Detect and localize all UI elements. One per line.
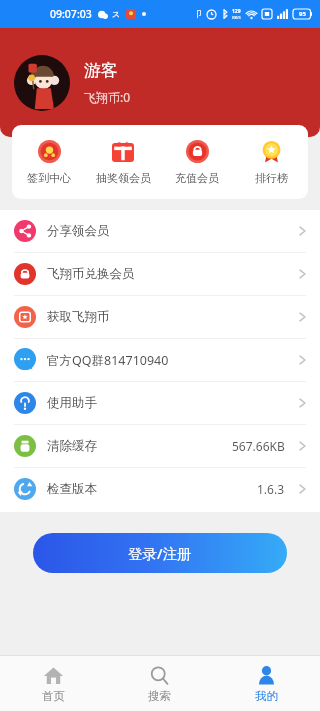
staticText: KB/S: [232, 15, 241, 20]
staticText: 飞翔币:0: [84, 89, 131, 105]
staticText: 1.6.3: [257, 481, 285, 497]
button[interactable]: 签到中心: [12, 125, 86, 199]
staticText: 搜索: [148, 689, 171, 703]
button[interactable]: 官方QQ群814710940: [0, 339, 320, 381]
staticText: 129: [232, 8, 241, 15]
staticText: 卩: [193, 9, 202, 20]
button[interactable]: 分享领会员: [0, 210, 320, 252]
button[interactable]: 我的: [213, 656, 320, 711]
button[interactable]: 使用助手: [0, 382, 320, 424]
staticText: 获取飞翔币: [47, 309, 110, 325]
staticText: 分享领会员: [47, 223, 110, 239]
staticText: 排行榜: [255, 171, 288, 185]
staticText: 抽奖领会员: [96, 171, 151, 185]
button[interactable]: 飞翔币兑换会员: [0, 253, 320, 295]
button[interactable]: 排行榜: [234, 125, 308, 199]
staticText: 我的: [255, 689, 278, 703]
staticText: 游客: [84, 60, 118, 81]
button[interactable]: 获取飞翔币: [0, 296, 320, 338]
button[interactable]: 抽奖领会员: [86, 125, 160, 199]
staticText: 充值会员: [175, 171, 219, 185]
staticText: 官方QQ群814710940: [47, 352, 169, 369]
staticText: 清除缓存: [47, 438, 97, 454]
staticText: 签到中心: [27, 171, 71, 185]
button[interactable]: 检查版本: [0, 468, 320, 510]
staticText: 登录/注册: [128, 543, 192, 563]
staticText: 飞翔币兑换会员: [47, 266, 135, 282]
button[interactable]: 登录/注册: [33, 533, 287, 573]
staticText: 09:07:03: [50, 7, 92, 21]
button[interactable]: 头像: [14, 55, 70, 111]
button[interactable]: 首页: [0, 656, 106, 711]
staticText: 567.66KB: [232, 438, 285, 454]
button[interactable]: 清除缓存: [0, 425, 320, 467]
staticText: 首页: [42, 689, 65, 703]
staticText: 95: [299, 10, 306, 18]
button[interactable]: 充值会员: [160, 125, 234, 199]
staticText: ス: [112, 9, 121, 19]
staticText: 使用助手: [47, 395, 97, 411]
button[interactable]: 搜索: [106, 656, 213, 711]
staticText: 检查版本: [47, 481, 97, 497]
